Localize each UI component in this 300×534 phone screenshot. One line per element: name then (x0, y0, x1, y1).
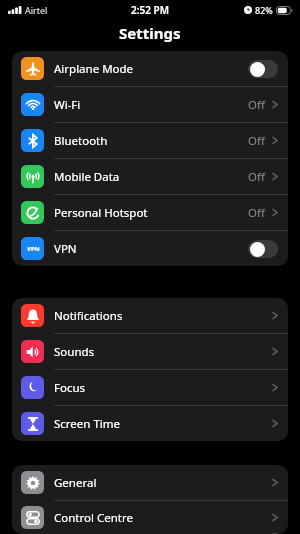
staticText: 82% (255, 4, 273, 16)
button[interactable]: VPN (12, 231, 288, 266)
button[interactable]: Mobile Data (12, 159, 288, 194)
staticText: Airplane Mode (54, 61, 248, 77)
button[interactable]: Toggle off (248, 240, 278, 258)
staticText: Sounds (54, 344, 272, 360)
staticText: General (54, 475, 272, 491)
staticText: Airtel (25, 4, 48, 16)
button[interactable]: Control Centre (12, 501, 288, 534)
button[interactable]: Sounds (12, 334, 288, 369)
staticText: Notifications (54, 308, 272, 324)
button[interactable]: Personal Hotspot (12, 195, 288, 230)
button[interactable]: Wi-Fi (12, 87, 288, 122)
staticText: Control Centre (54, 510, 272, 526)
staticText: Wi-Fi (54, 97, 248, 113)
staticText: Off (248, 205, 265, 221)
staticText: Settings (119, 23, 181, 43)
staticText: Screen Time (54, 416, 272, 432)
staticText: VPN (27, 245, 40, 253)
button[interactable]: Toggle off (248, 60, 278, 78)
staticText: VPN (54, 241, 248, 257)
button[interactable]: Focus (12, 370, 288, 405)
staticText: Bluetooth (54, 133, 248, 149)
staticText: Focus (54, 380, 272, 396)
button[interactable]: Airplane Mode (12, 51, 288, 86)
staticText: 2:52 PM (131, 3, 169, 17)
button[interactable]: Notifications (12, 298, 288, 333)
staticText: Off (248, 133, 265, 149)
button[interactable]: Screen Time (12, 406, 288, 441)
staticText: Personal Hotspot (54, 205, 248, 221)
staticText: Off (248, 169, 265, 185)
button[interactable]: General (12, 465, 288, 500)
staticText: Off (248, 97, 265, 113)
staticText: Mobile Data (54, 169, 248, 185)
button[interactable]: Bluetooth (12, 123, 288, 158)
